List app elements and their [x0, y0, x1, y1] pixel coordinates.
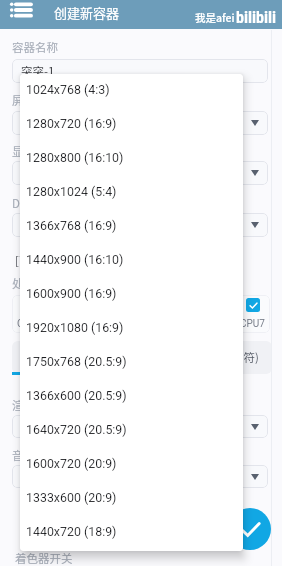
- staticText: 渲染器: [12, 397, 47, 414]
- button[interactable]: Menu: [3, 0, 38, 23]
- staticText: 1366x768 (16:9): [26, 218, 117, 233]
- staticText: 突突-1: [21, 63, 55, 80]
- button[interactable]: 1280x720 (16:9): [20, 108, 243, 142]
- staticText: 默认: [21, 418, 44, 435]
- button[interactable]: 突突-1: [12, 59, 268, 83]
- button[interactable]: 1366x768 (16:9): [20, 210, 243, 244]
- staticText: 1640x720 (20.5:9): [26, 422, 127, 437]
- button[interactable]: CPU4: [12, 295, 270, 333]
- staticText: 1366x600 (20.5:9): [26, 388, 127, 403]
- button[interactable]: 1750x768 (20.5:9): [20, 346, 243, 380]
- staticText: 1280x800 (16:10): [26, 150, 124, 165]
- button[interactable]: Confirm: [229, 508, 271, 550]
- button[interactable]: 默认: [12, 415, 268, 438]
- staticText: 1440x720 (18:9): [26, 524, 117, 539]
- staticText: 1333x600 (20:9): [26, 490, 117, 505]
- button[interactable]: 1024x768 (4:3): [12, 111, 268, 135]
- button[interactable]: 1280x1024 (5:4): [20, 176, 243, 210]
- button[interactable]: 1333x600 (20:9): [20, 482, 243, 516]
- staticText: 音频驱动: [12, 447, 58, 464]
- staticText: 处理器核心: [12, 275, 70, 292]
- button[interactable]: 1366x600 (20.5:9): [20, 380, 243, 414]
- staticText: 240: [21, 217, 41, 234]
- staticText: 1024x768 (4:3): [26, 82, 110, 97]
- button[interactable]: 1280x800 (16:10): [20, 142, 243, 176]
- staticText: [高级设置]: [15, 252, 69, 269]
- button[interactable]: 1600x900 (16:9): [20, 278, 243, 312]
- staticText: CPU5: [91, 318, 116, 330]
- staticText: 1600x720 (20:9): [26, 456, 117, 471]
- staticText: 我是afei: [195, 10, 235, 25]
- button[interactable]: 240: [12, 213, 268, 237]
- button[interactable]: 1640x720 (20.5:9): [20, 414, 243, 448]
- button[interactable]: 1920x1080 (16:9): [20, 312, 243, 346]
- staticText: 1280x1024 (5:4): [26, 184, 117, 199]
- staticText: 创建新容器: [54, 3, 120, 22]
- staticText: 屏幕分辨率: [12, 92, 70, 109]
- staticText: 1920x1080 (16:9): [26, 320, 124, 335]
- staticText: 1600x900 (16:9): [26, 286, 117, 301]
- staticText: 1750x768 (20.5:9): [26, 354, 127, 369]
- button[interactable]: 1024x768 (4:3): [20, 74, 243, 108]
- button[interactable]: 1440x720 (18:9): [20, 516, 243, 550]
- staticText: 着色器开关: [15, 550, 73, 566]
- staticText: 显示模式: [12, 143, 58, 160]
- button[interactable]: 挂载目录，请输入外部存储路径目录名称(盘符): [12, 341, 272, 374]
- button[interactable]: 默认: [12, 161, 268, 185]
- button[interactable]: 1440x900 (16:10): [20, 244, 243, 278]
- staticText: CPU7: [240, 318, 265, 330]
- staticText: DPI 设置: [12, 195, 57, 212]
- staticText: 1280x720 (16:9): [26, 116, 117, 131]
- staticText: 1024x768 (4:3): [21, 115, 98, 132]
- staticText: 1440x900 (16:10): [26, 252, 124, 267]
- staticText: 容器名称: [12, 39, 58, 56]
- button[interactable]: CPU7: [246, 298, 260, 312]
- staticText: 挂载目录，请输入外部存储路径目录名称(盘符): [21, 349, 259, 366]
- staticText: CPU4: [17, 318, 42, 330]
- staticText: bilibili: [236, 8, 277, 27]
- button[interactable]: 默认: [12, 465, 268, 488]
- button[interactable]: 1600x720 (20:9): [20, 448, 243, 482]
